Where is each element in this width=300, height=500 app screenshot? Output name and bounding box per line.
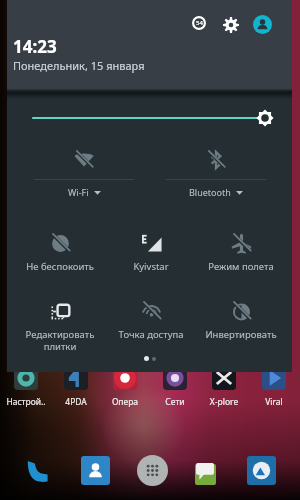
- button[interactable]: App: [188, 453, 222, 487]
- button[interactable]: 4PDA: [52, 366, 100, 410]
- staticText: Понедельник, 15 января: [13, 58, 145, 73]
- button[interactable]: X-plore: [200, 366, 248, 410]
- button[interactable]: Settings: [223, 17, 239, 33]
- staticText: Kyivstar: [105, 260, 197, 273]
- staticText: Настрой..: [2, 396, 50, 408]
- button[interactable]: Bluetooth: [160, 146, 272, 200]
- button[interactable]: Wi-Fi: [28, 146, 140, 200]
- button[interactable]: App: [135, 453, 169, 487]
- button[interactable]: Режим полета: [195, 233, 287, 285]
- staticText: X-plore: [200, 396, 248, 408]
- button[interactable]: Не беспокоить: [14, 233, 106, 285]
- staticText: 54: [196, 19, 203, 27]
- button[interactable]: App: [78, 453, 112, 487]
- staticText: Инвертировать: [195, 328, 287, 341]
- button[interactable]: App: [21, 453, 55, 487]
- staticText: Viral: [250, 396, 298, 408]
- staticText: Режим полета: [195, 260, 287, 273]
- button[interactable]: Brightness: [7, 105, 292, 131]
- button[interactable]: Настрой..: [2, 366, 50, 410]
- button[interactable]: Сети: [151, 366, 199, 410]
- button[interactable]: App: [244, 453, 278, 487]
- button[interactable]: Viral: [250, 366, 298, 410]
- staticText: 4PDA: [52, 396, 100, 408]
- button[interactable]: 14:23: [13, 35, 145, 73]
- staticText: Точка доступа: [105, 328, 197, 341]
- staticText: 14:23: [13, 35, 57, 58]
- button[interactable]: Battery 54 percent: [192, 16, 206, 30]
- staticText: Опера: [101, 396, 149, 408]
- staticText: Не беспокоить: [14, 260, 106, 273]
- button[interactable]: Опера: [101, 366, 149, 410]
- staticText: Сети: [151, 396, 199, 408]
- button[interactable]: Редактировать плитки: [14, 301, 106, 353]
- button[interactable]: Kyivstar: [105, 233, 197, 285]
- staticText: Редактировать плитки: [14, 328, 106, 353]
- staticText: Bluetooth: [189, 186, 231, 198]
- button[interactable]: Инвертировать: [195, 301, 287, 353]
- button[interactable]: User profile: [253, 15, 272, 34]
- button[interactable]: Точка доступа: [105, 301, 197, 353]
- staticText: Wi-Fi: [68, 186, 89, 198]
